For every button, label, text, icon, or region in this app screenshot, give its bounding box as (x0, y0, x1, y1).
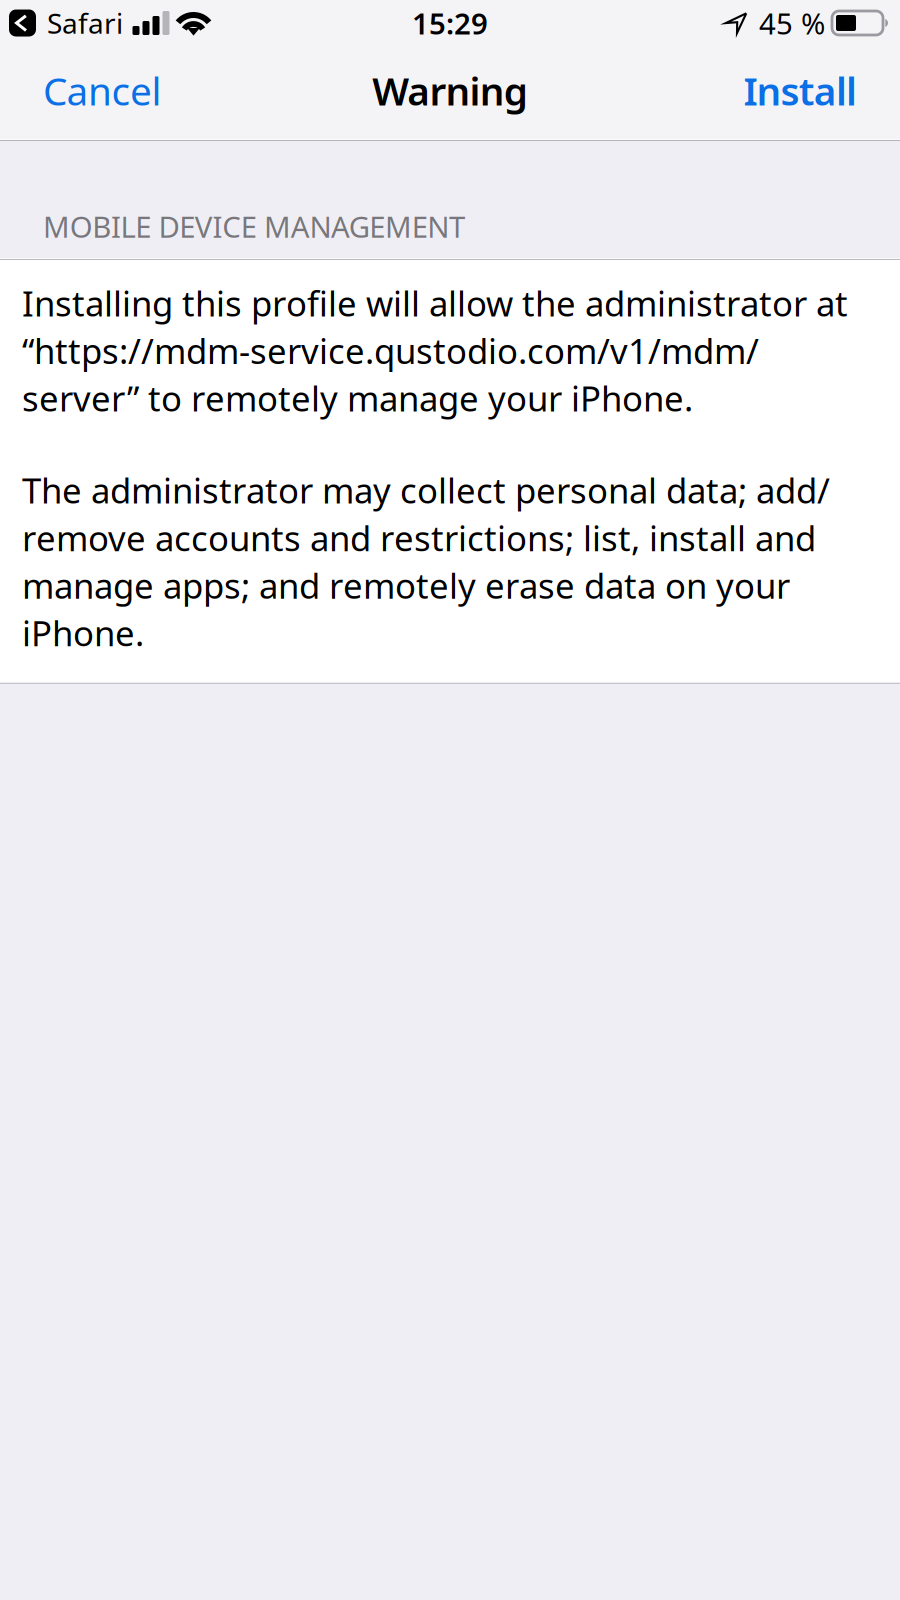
staticText: The administrator may collect personal d… (22, 467, 830, 656)
button[interactable]: Cancel (25, 53, 179, 132)
staticText: 45 % (759, 3, 825, 42)
staticText: MOBILE DEVICE MANAGEMENT (43, 207, 465, 246)
staticText: Installing this profile will allow the a… (22, 280, 848, 421)
button[interactable]: Back to Safari (9, 4, 123, 42)
staticText: 15:29 (412, 3, 488, 42)
staticText: Install (743, 65, 857, 116)
staticText: Cancel (43, 65, 161, 116)
staticText: Safari (47, 4, 123, 42)
staticText: Warning (372, 65, 528, 116)
button[interactable]: Install (725, 53, 875, 132)
